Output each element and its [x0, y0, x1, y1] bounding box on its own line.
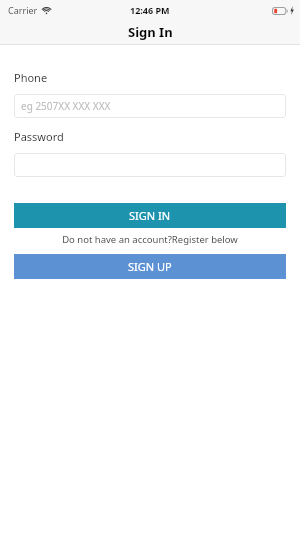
button[interactable]: SIGN IN: [14, 203, 286, 228]
button[interactable]: eg 2507XX XXX XXX: [14, 94, 286, 118]
other: Battery low: [272, 7, 289, 15]
staticText: SIGN UP: [128, 259, 172, 274]
other: Wi-Fi signal: [42, 6, 51, 15]
staticText: 12:46 PM: [130, 4, 170, 16]
staticText: Password: [14, 129, 64, 144]
staticText: eg 2507XX XXX XXX: [21, 99, 111, 113]
button[interactable]: [14, 153, 286, 177]
other: Charging: [290, 6, 294, 15]
staticText: Carrier: [8, 4, 38, 16]
staticText: SIGN IN: [129, 208, 171, 223]
staticText: Phone: [14, 70, 48, 85]
staticText: Do not have an account?Register below: [62, 233, 238, 246]
button[interactable]: SIGN UP: [14, 254, 286, 279]
staticText: Sign In: [128, 23, 173, 41]
